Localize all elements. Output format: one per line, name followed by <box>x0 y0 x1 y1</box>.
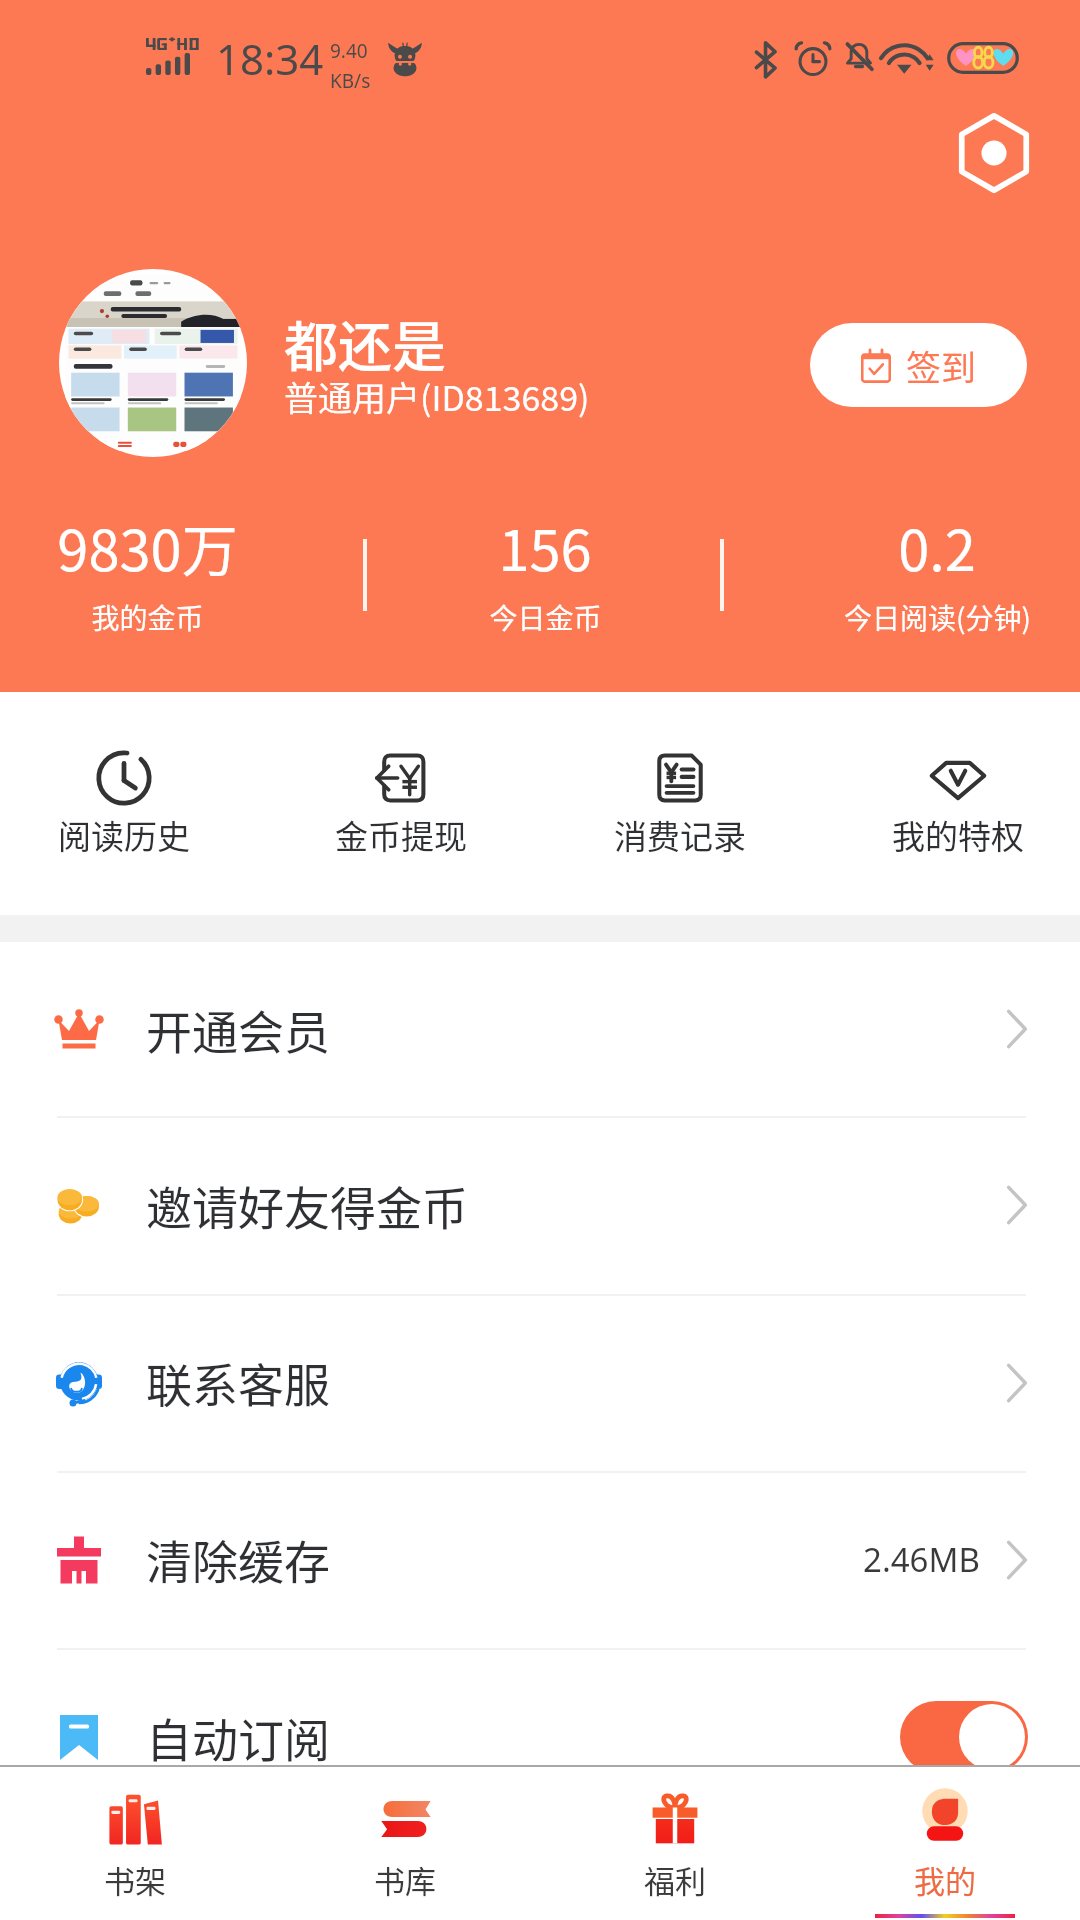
button[interactable]: 邀请好友得金币 <box>0 1116 1080 1294</box>
staticText: 普通用户(ID813689) <box>284 372 590 421</box>
button[interactable]: 156 <box>375 506 715 666</box>
button[interactable]: 阅读历史 <box>4 750 244 890</box>
button[interactable]: 书库 <box>280 1765 530 1920</box>
staticText: 我的金币 <box>91 597 204 638</box>
staticText: 9830万 <box>57 506 238 587</box>
button[interactable]: 书架 <box>10 1765 260 1920</box>
button[interactable]: 消费记录 <box>560 750 800 890</box>
staticText: KB/s <box>330 68 371 94</box>
staticText: 开通会员 <box>146 996 330 1063</box>
staticText: 书架 <box>104 1857 166 1902</box>
staticText: 邀请好友得金币 <box>146 1172 468 1239</box>
button[interactable]: 自动订阅 <box>0 1648 1080 1826</box>
staticText: 清除缓存 <box>146 1526 330 1593</box>
staticText: 联系客服 <box>146 1349 330 1416</box>
staticText: 我的 <box>914 1857 976 1902</box>
staticText: 9.40 <box>330 38 368 64</box>
staticText: 2.46MB <box>863 1537 980 1582</box>
staticText: 我的特权 <box>892 811 1024 859</box>
staticText: 156 <box>498 506 592 587</box>
staticText: 福利 <box>644 1857 706 1902</box>
button[interactable]: 签到 <box>810 323 1027 407</box>
button[interactable]: 清除缓存 <box>0 1471 1080 1648</box>
staticText: 签到 <box>906 340 977 391</box>
staticText: 自动订阅 <box>146 1704 330 1771</box>
button[interactable]: 金币提现 <box>281 750 521 890</box>
button[interactable]: 我的特权 <box>838 750 1078 890</box>
button[interactable]: 联系客服 <box>0 1294 1080 1471</box>
button[interactable]: 0.2 <box>767 506 1080 666</box>
staticText: 0.2 <box>898 506 976 587</box>
staticText: 书库 <box>374 1857 436 1902</box>
staticText: 金币提现 <box>335 811 467 859</box>
button[interactable]: 我的 <box>820 1765 1070 1920</box>
button[interactable]: Avatar <box>59 269 247 457</box>
staticText: 今日金币 <box>489 597 602 638</box>
button[interactable]: 开通会员 <box>0 942 1080 1116</box>
staticText: 都还是 <box>284 304 446 382</box>
staticText: 今日阅读(分钟) <box>844 597 1031 638</box>
button[interactable]: 福利 <box>550 1765 800 1920</box>
staticText: 阅读历史 <box>58 811 190 859</box>
button[interactable]: Scan <box>953 112 1035 194</box>
staticText: 消费记录 <box>614 811 746 859</box>
button[interactable]: Auto subscribe toggle <box>900 1701 1028 1773</box>
staticText: 18:34 <box>216 30 324 87</box>
button[interactable]: 9830万 <box>0 506 317 666</box>
